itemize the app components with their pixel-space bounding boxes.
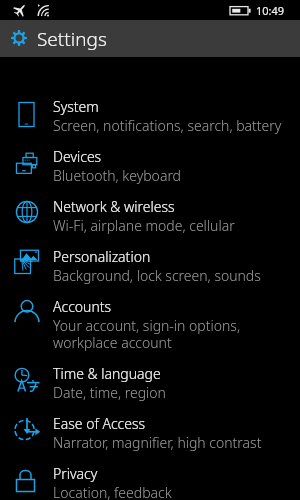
button[interactable]: Privacy — [0, 464, 300, 500]
staticText: Narrator, magnifier, high contrast — [53, 433, 262, 452]
button[interactable]: Personalization — [0, 247, 300, 297]
staticText: Screen, notifications, search, battery — [53, 116, 282, 135]
button[interactable]: Ease of Access — [0, 414, 300, 464]
staticText: Personalization — [53, 247, 151, 266]
staticText: Location, feedback — [53, 483, 172, 500]
staticText: Settings — [37, 26, 107, 52]
staticText: Devices — [53, 147, 102, 166]
staticText: Time & language — [53, 364, 161, 383]
staticText: Bluetooth, keyboard — [53, 166, 182, 185]
staticText: System — [53, 97, 99, 116]
staticText: Your account, sign-in options, workplace… — [53, 316, 292, 352]
staticText: Wi-Fi, airplane mode, cellular — [53, 216, 235, 235]
button[interactable]: Time & language — [0, 364, 300, 414]
button[interactable]: Devices — [0, 147, 300, 197]
button[interactable]: Network & wireless — [0, 197, 300, 247]
staticText: Network & wireless — [53, 197, 175, 216]
staticText: Date, time, region — [53, 383, 166, 402]
staticText: Background, lock screen, sounds — [53, 266, 261, 285]
staticText: Privacy — [53, 464, 98, 483]
staticText: 10:49 — [256, 3, 285, 18]
button[interactable]: Accounts — [0, 297, 300, 364]
button[interactable]: System — [0, 97, 300, 147]
staticText: Ease of Access — [53, 414, 146, 433]
button[interactable]: Settings — [0, 20, 300, 57]
staticText: Accounts — [53, 297, 112, 316]
